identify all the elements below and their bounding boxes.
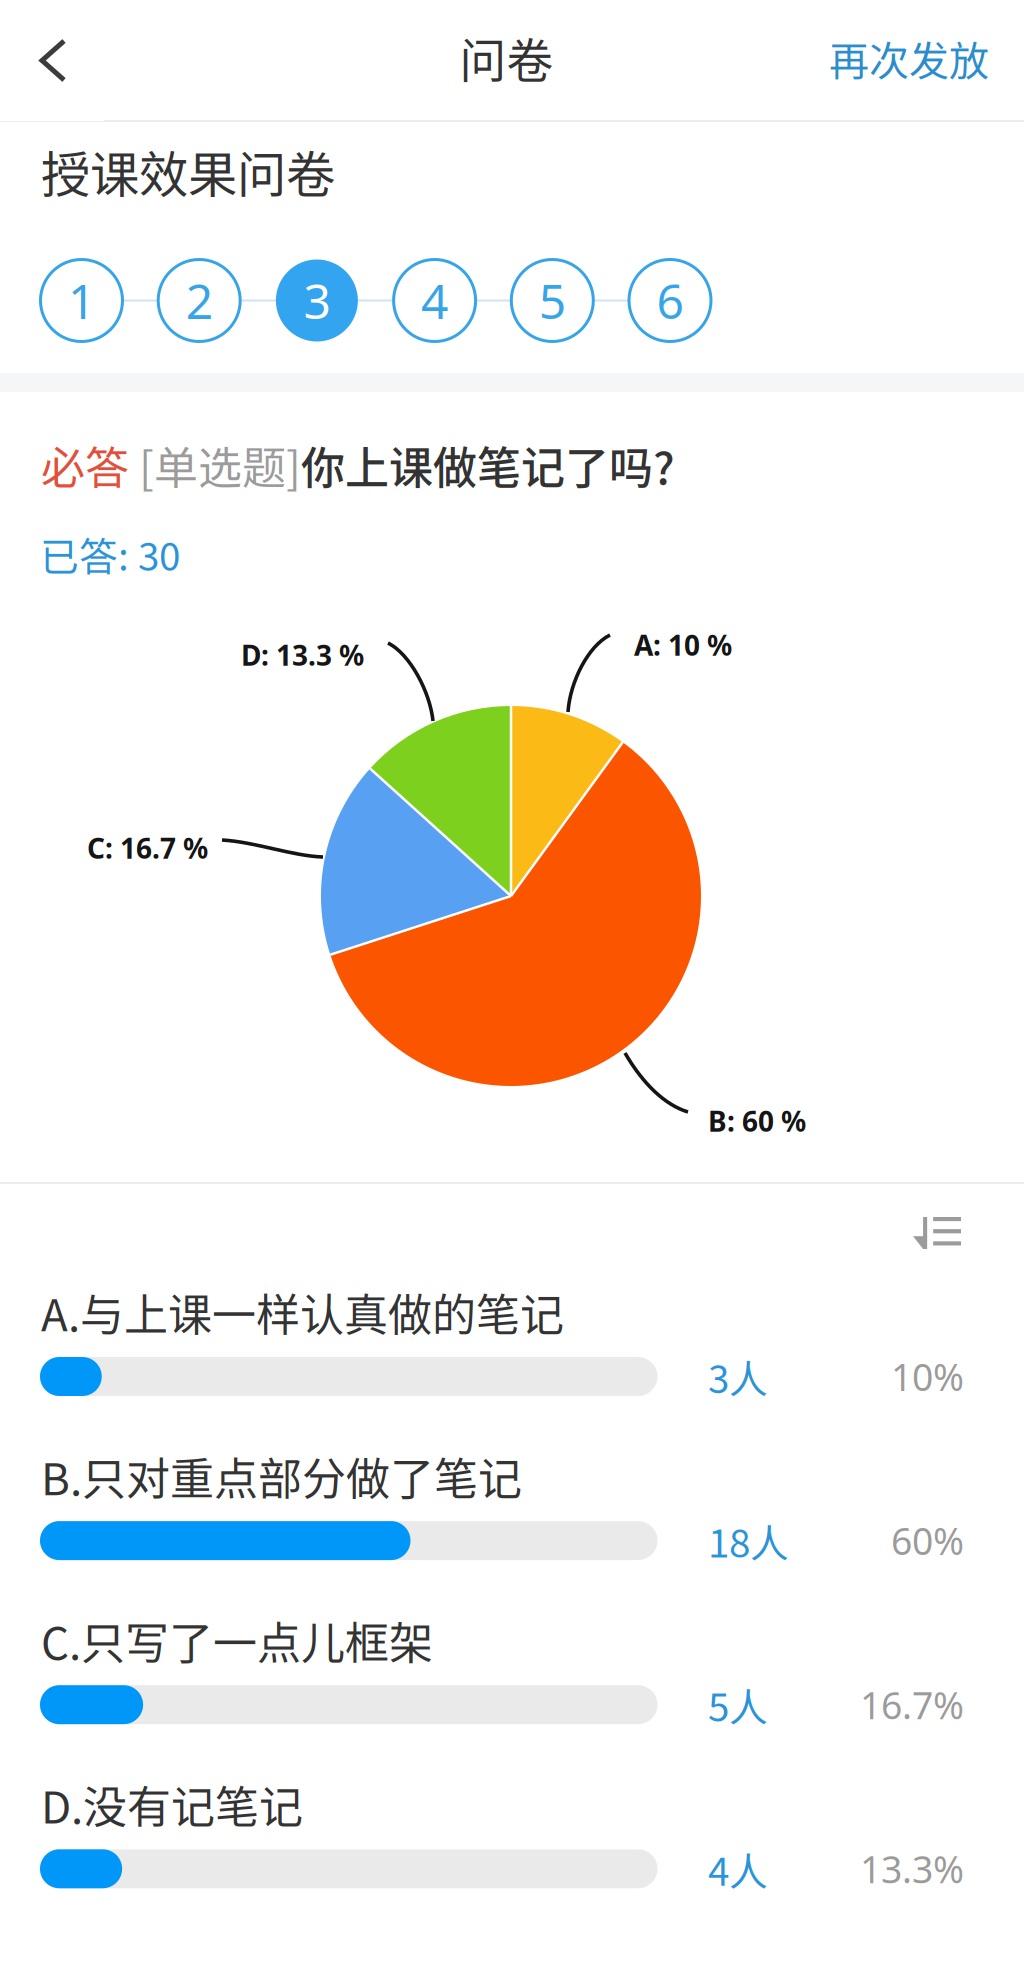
staticText: 2 [186, 269, 213, 332]
staticText: 4人 [708, 1841, 768, 1897]
button[interactable]: 再次发放 [804, 0, 1024, 118]
staticText: 16.7% [860, 1680, 964, 1729]
staticText: 4 [421, 269, 448, 332]
staticText: B.只对重点部分做了笔记 [41, 1444, 522, 1508]
staticText: 1 [68, 269, 95, 332]
staticText: 3 [303, 269, 330, 332]
button[interactable]: 3 [276, 259, 358, 341]
staticText: B: 60 % [708, 1102, 806, 1140]
button[interactable]: 4 [394, 259, 476, 341]
staticText: 授课效果问卷 [41, 135, 335, 207]
button[interactable]: 6 [629, 259, 711, 341]
staticText: [单选题] [129, 433, 301, 497]
staticText: 6 [656, 269, 683, 332]
staticText: 已答: 30 [40, 526, 180, 582]
staticText: D: 13.3 % [241, 636, 364, 674]
staticText: 问卷 [459, 24, 553, 91]
staticText: 你上课做笔记了吗? [301, 433, 675, 497]
staticText: 60% [891, 1516, 964, 1565]
staticText: 3人 [708, 1348, 768, 1404]
staticText: 5人 [708, 1677, 768, 1733]
button[interactable]: 5 [511, 259, 593, 341]
staticText: 必答 [41, 433, 129, 497]
staticText: 10% [891, 1352, 964, 1401]
staticText: A.与上课一样认真做的笔记 [41, 1280, 564, 1344]
staticText: 再次发放 [829, 29, 989, 87]
button[interactable]: 1 [40, 259, 122, 341]
button[interactable]: 2 [158, 259, 240, 341]
staticText: 13.3% [860, 1844, 964, 1894]
staticText: D.没有记笔记 [41, 1772, 303, 1836]
staticText: C.只写了一点儿框架 [41, 1608, 433, 1672]
staticText: C: 16.7 % [87, 829, 208, 867]
button[interactable]: Back [0, 0, 104, 121]
button[interactable]: Sort answers [889, 1193, 985, 1273]
staticText: 18人 [708, 1513, 789, 1569]
staticText: A: 10 % [634, 626, 732, 664]
staticText: 5 [539, 269, 566, 332]
